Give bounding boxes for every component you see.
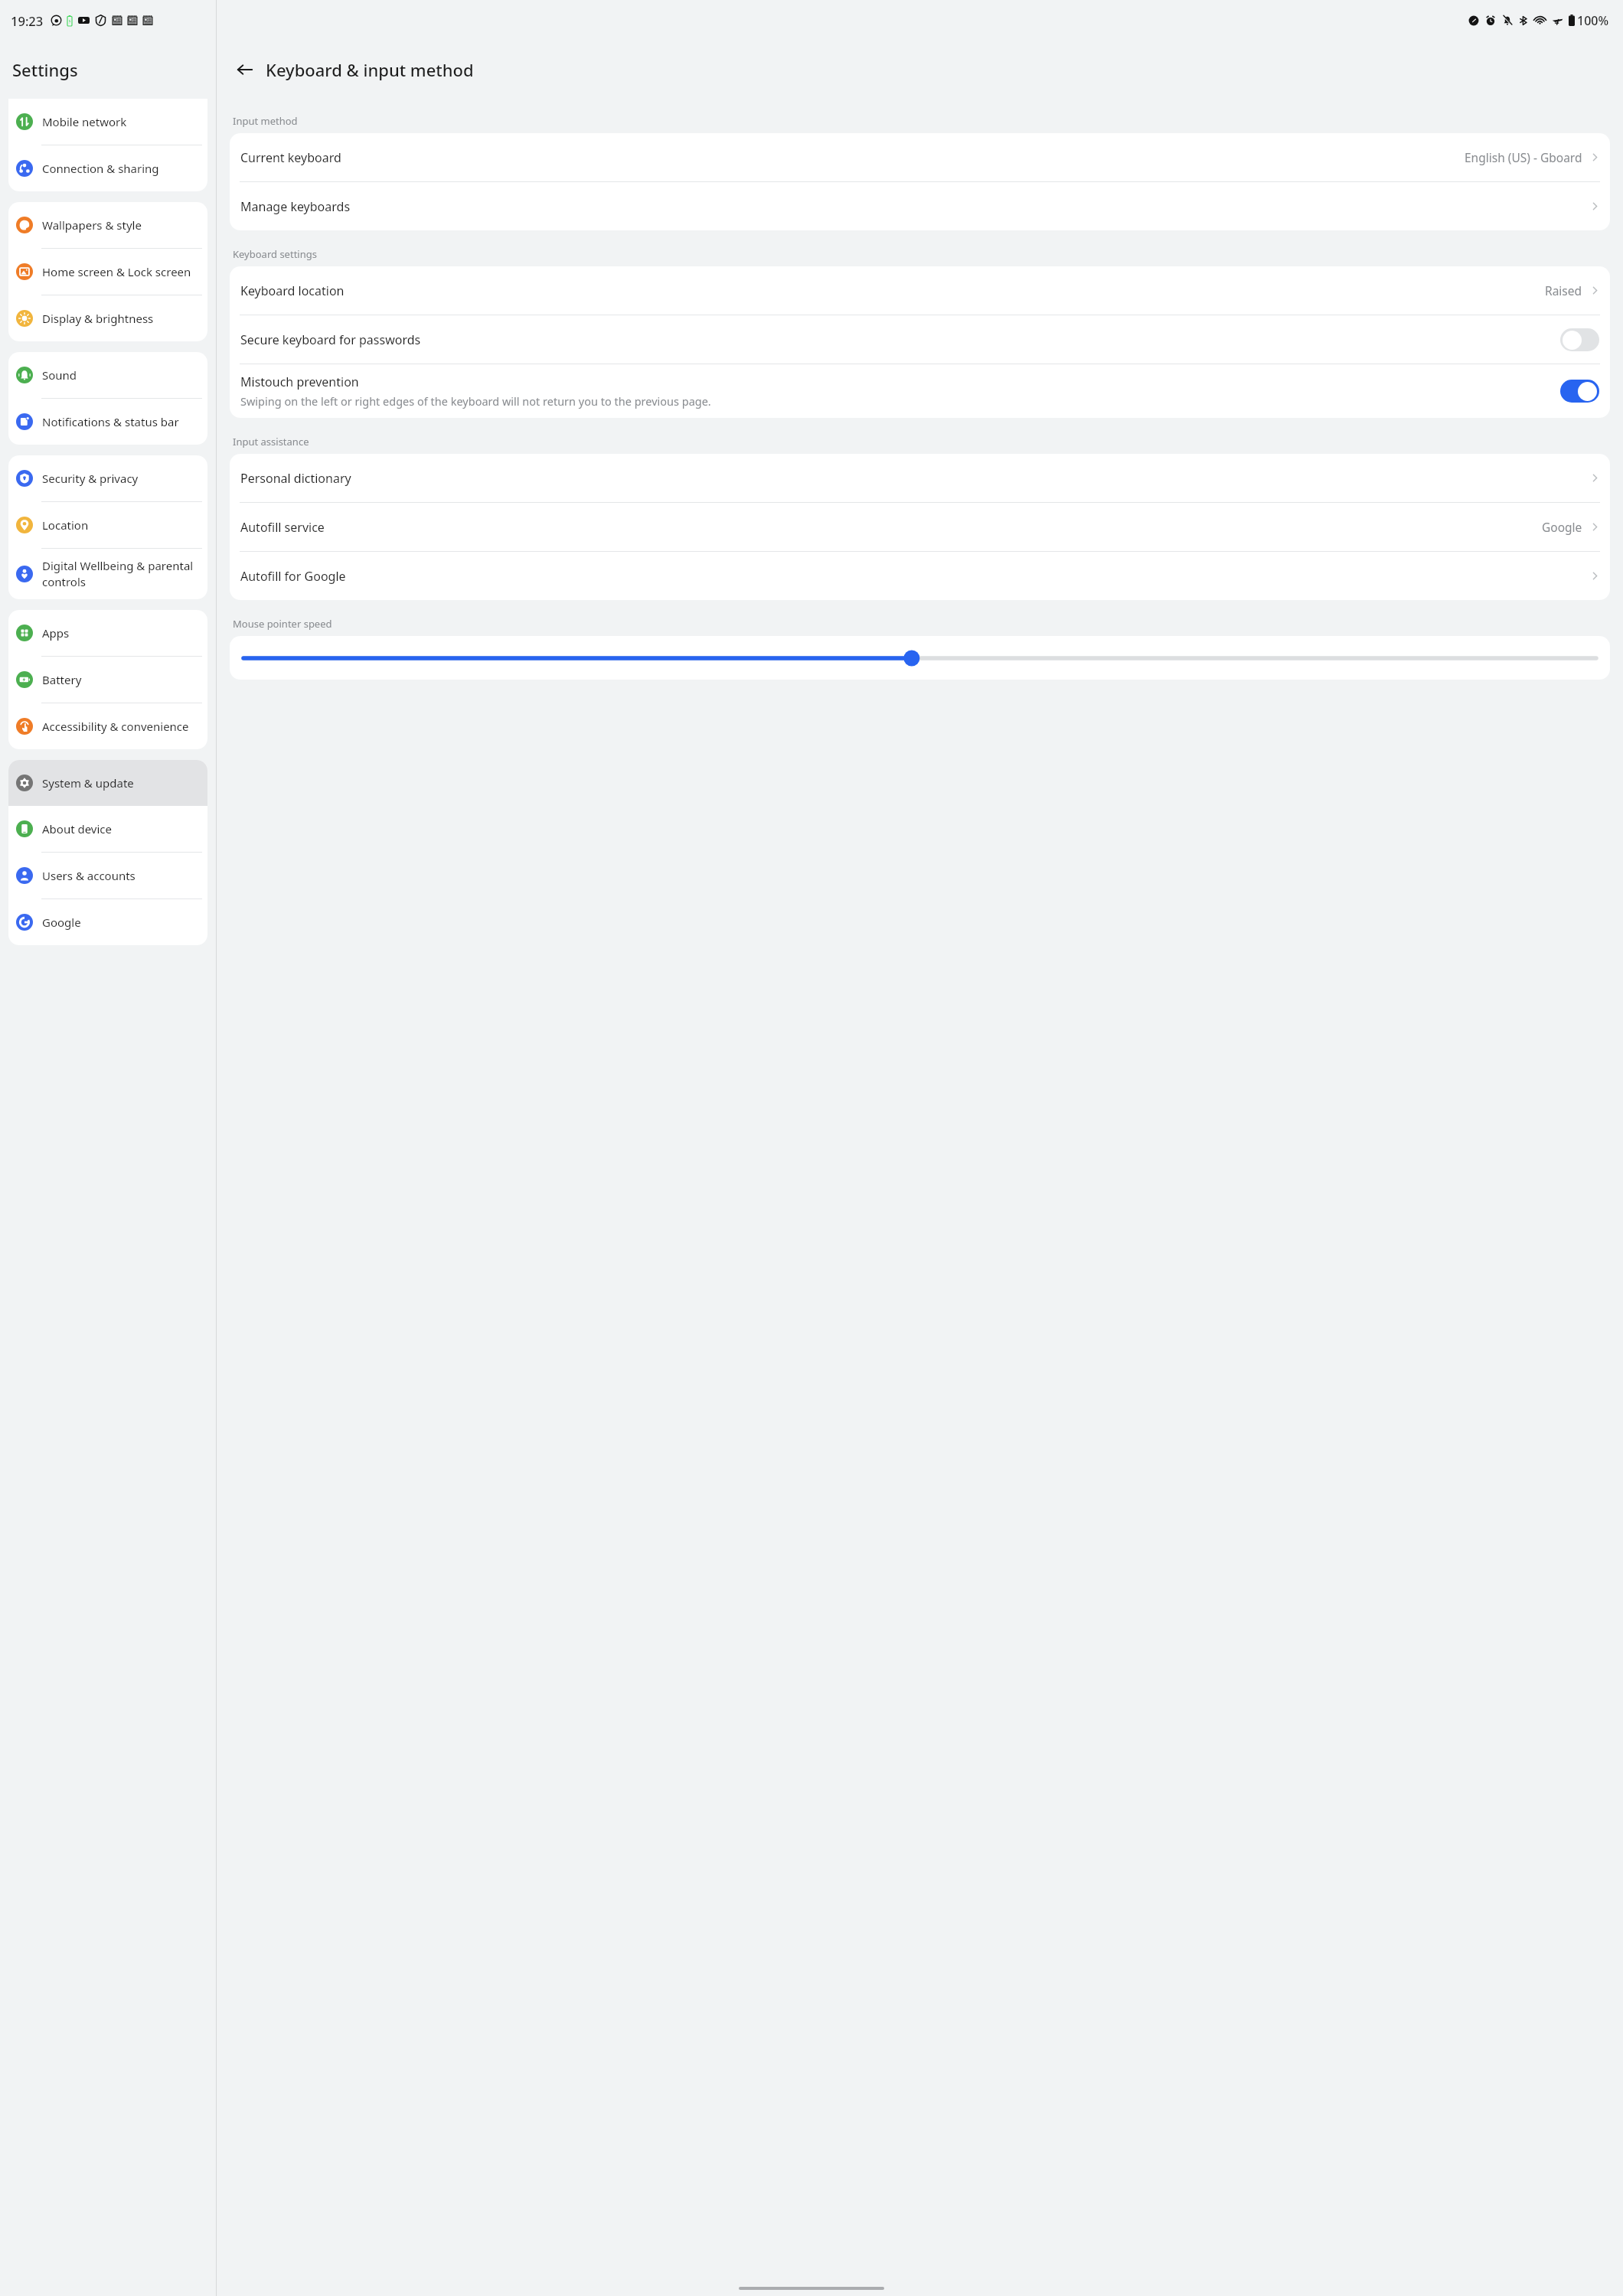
staticText: Sound [42,367,77,383]
button[interactable]: Apps [8,610,207,657]
staticText: About device [42,821,113,837]
button[interactable]: Battery [8,657,207,703]
staticText: Personal dictionary [240,470,351,487]
staticText: Input assistance [233,435,309,448]
staticText: Apps [42,625,70,641]
staticText: Connection & sharing [42,161,159,176]
button[interactable]: Back [232,57,258,83]
staticText: Security & privacy [42,471,139,486]
button[interactable]: Personal dictionary [230,454,1610,503]
button[interactable]: Display & brightness [8,295,207,341]
button[interactable]: Google [8,899,207,945]
button[interactable]: Accessibility & convenience [8,703,207,749]
button[interactable]: Digital Wellbeing & parental controls [8,549,207,599]
button[interactable]: Secure keyboard for passwords [230,315,1610,364]
button[interactable]: Autofill service [230,503,1610,552]
staticText: Keyboard settings [233,247,317,261]
button[interactable]: Location [8,502,207,549]
button[interactable]: Mistouch prevention [230,364,1610,418]
staticText: Raised [1545,282,1582,298]
button[interactable]: Manage keyboards [230,182,1610,230]
staticText: Users & accounts [42,868,136,883]
staticText: Settings [12,58,78,81]
staticText: Wallpapers & style [42,217,142,233]
staticText: Autofill for Google [240,568,346,585]
staticText: Battery [42,672,82,687]
staticText: Swiping on the left or right edges of th… [240,393,711,409]
button[interactable]: Notifications & status bar [8,399,207,445]
staticText: Mouse pointer speed [233,617,332,631]
staticText: Home screen & Lock screen [42,264,191,279]
staticText: English (US) - Gboard [1465,149,1582,165]
button[interactable]: About device [8,806,207,853]
staticText: Notifications & status bar [42,414,179,429]
button[interactable]: Security & privacy [8,455,207,502]
staticText: 19:23 [11,12,44,29]
staticText: Keyboard location [240,282,345,299]
staticText: Secure keyboard for passwords [240,331,421,348]
button[interactable]: Sound [8,352,207,399]
staticText: System & update [42,775,134,791]
staticText: Keyboard & input method [266,58,474,81]
button[interactable]: System & update [8,760,207,806]
button[interactable]: Keyboard location [230,266,1610,315]
staticText: Digital Wellbeing & parental controls [42,558,201,590]
button[interactable]: Users & accounts [8,853,207,899]
staticText: 100% [1577,12,1609,29]
button[interactable]: Connection & sharing [8,145,207,191]
staticText: Mobile network [42,114,127,129]
button[interactable]: Autofill for Google [230,552,1610,600]
button[interactable]: Current keyboard [230,133,1610,182]
staticText: Google [42,915,81,930]
staticText: Mistouch prevention [240,373,359,390]
staticText: Google [1542,519,1582,535]
staticText: Location [42,517,89,533]
button[interactable]: Home screen & Lock screen [8,249,207,295]
button[interactable]: Secure keyboard for passwords [1560,328,1599,351]
staticText: Input method [233,114,298,128]
staticText: Manage keyboards [240,198,351,215]
staticText: Display & brightness [42,311,154,326]
button[interactable]: Mistouch prevention [1560,380,1599,403]
button[interactable]: Wallpapers & style [8,202,207,249]
button[interactable]: Mobile network [8,99,207,145]
staticText: Accessibility & convenience [42,719,189,734]
staticText: Autofill service [240,519,325,536]
staticText: Current keyboard [240,149,341,166]
